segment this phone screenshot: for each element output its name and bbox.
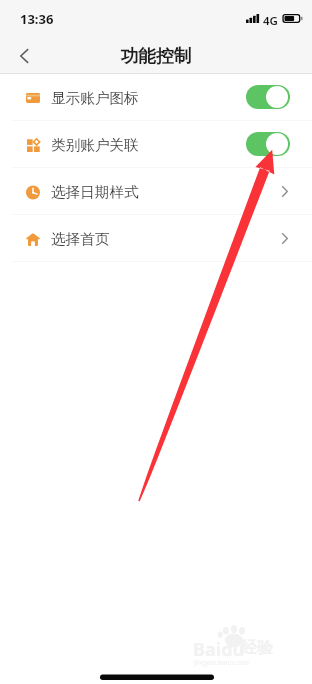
staticText: 类别账户关联 (51, 136, 139, 154)
staticText: 功能控制 (120, 45, 192, 67)
button[interactable]: 选择日期样式 (0, 168, 312, 214)
staticText: 选择首页 (51, 230, 110, 248)
staticText: Baidu (193, 637, 245, 662)
button[interactable]: 类别账户关联 (0, 121, 312, 167)
staticText: 显示账户图标 (51, 89, 139, 107)
staticText: 选择日期样式 (51, 183, 139, 201)
staticText: 13:36 (20, 10, 54, 28)
staticText: 4G (263, 13, 278, 29)
button[interactable]: Toggle (246, 132, 290, 156)
staticText: jingyan.baidu.com (194, 658, 251, 667)
button[interactable]: Back (0, 36, 47, 73)
button[interactable]: 选择首页 (0, 215, 312, 261)
button[interactable]: Toggle (246, 85, 290, 109)
button[interactable]: 显示账户图标 (0, 74, 312, 120)
staticText: 经验 (241, 638, 273, 658)
